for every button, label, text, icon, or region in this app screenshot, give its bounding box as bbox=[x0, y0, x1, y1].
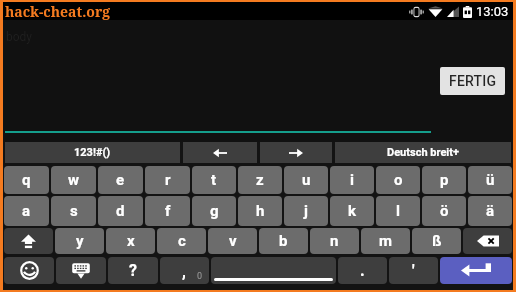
staticText: d bbox=[116, 202, 125, 220]
staticText: ö bbox=[440, 202, 449, 220]
button[interactable]: Emoji bbox=[4, 257, 54, 284]
button[interactable]: j bbox=[284, 196, 328, 226]
button[interactable]: p bbox=[422, 166, 466, 194]
button[interactable]: i bbox=[330, 166, 374, 194]
button[interactable]: ? bbox=[108, 257, 158, 284]
button[interactable]: d bbox=[98, 196, 143, 226]
button[interactable]: s bbox=[51, 196, 96, 226]
staticText: f bbox=[165, 202, 171, 220]
staticText: p bbox=[440, 171, 449, 189]
button[interactable]: Shift bbox=[4, 228, 53, 254]
button[interactable]: Enter bbox=[440, 257, 512, 284]
staticText: z bbox=[256, 171, 264, 189]
button[interactable]: v bbox=[208, 228, 257, 254]
button[interactable]: y bbox=[55, 228, 104, 254]
staticText: a bbox=[22, 202, 31, 220]
staticText: Deutsch breit+ bbox=[387, 146, 459, 159]
staticText: k bbox=[348, 202, 357, 220]
staticText: q bbox=[22, 171, 31, 189]
staticText: body bbox=[6, 30, 33, 44]
staticText: t bbox=[211, 171, 217, 189]
staticText: , bbox=[182, 262, 186, 281]
staticText: s bbox=[70, 202, 78, 220]
button[interactable]: e bbox=[98, 166, 143, 194]
staticText: 0 bbox=[197, 271, 203, 282]
button[interactable]: ö bbox=[422, 196, 466, 226]
button[interactable]: b bbox=[259, 228, 308, 254]
button[interactable]: f bbox=[145, 196, 190, 226]
button[interactable]: ä bbox=[468, 196, 512, 226]
button[interactable]: ' bbox=[389, 257, 438, 284]
button[interactable]: g bbox=[192, 196, 236, 226]
button[interactable]: . bbox=[338, 257, 387, 284]
button[interactable]: a bbox=[4, 196, 49, 226]
button[interactable]: n bbox=[310, 228, 359, 254]
button[interactable]: z bbox=[238, 166, 282, 194]
button[interactable]: q bbox=[4, 166, 49, 194]
button[interactable]: FERTIG bbox=[440, 67, 505, 95]
staticText: h bbox=[256, 202, 265, 220]
button[interactable]: ü bbox=[468, 166, 512, 194]
staticText: l bbox=[396, 202, 400, 220]
staticText: i bbox=[350, 171, 354, 189]
staticText: c bbox=[178, 232, 186, 250]
button[interactable]: Next bbox=[260, 142, 332, 163]
staticText: ä bbox=[486, 202, 495, 220]
staticText: v bbox=[229, 232, 237, 250]
button[interactable]: Deutsch breit+ bbox=[335, 142, 511, 163]
staticText: u bbox=[302, 171, 311, 189]
staticText: hack-cheat.org bbox=[5, 2, 111, 20]
button[interactable]: Hide keyboard bbox=[56, 257, 106, 284]
staticText: j bbox=[304, 202, 308, 220]
button[interactable]: ß bbox=[412, 228, 461, 254]
staticText: x bbox=[127, 232, 135, 250]
button[interactable]: x bbox=[106, 228, 155, 254]
button[interactable]: k bbox=[330, 196, 374, 226]
staticText: n bbox=[330, 232, 339, 250]
button[interactable]: , bbox=[160, 257, 209, 284]
staticText: 13:03 bbox=[476, 4, 509, 19]
button[interactable]: m bbox=[361, 228, 410, 254]
staticText: ? bbox=[129, 261, 137, 280]
button[interactable]: t bbox=[192, 166, 236, 194]
staticText: m bbox=[379, 232, 392, 250]
button[interactable]: Previous bbox=[183, 142, 257, 163]
staticText: y bbox=[76, 232, 84, 250]
button[interactable]: w bbox=[51, 166, 96, 194]
staticText: ß bbox=[432, 232, 442, 250]
button[interactable]: h bbox=[238, 196, 282, 226]
staticText: . bbox=[360, 261, 365, 280]
staticText: g bbox=[210, 202, 219, 220]
staticText: b bbox=[279, 232, 288, 250]
staticText: FERTIG bbox=[449, 73, 497, 89]
staticText: e bbox=[116, 171, 125, 189]
button[interactable]: u bbox=[284, 166, 328, 194]
button[interactable]: c bbox=[157, 228, 206, 254]
staticText: r bbox=[165, 171, 171, 189]
button[interactable]: l bbox=[376, 196, 420, 226]
button[interactable]: Backspace bbox=[463, 228, 512, 254]
staticText: o bbox=[394, 171, 403, 189]
button[interactable]: r bbox=[145, 166, 190, 194]
button[interactable]: o bbox=[376, 166, 420, 194]
button[interactable]: Space bbox=[211, 257, 336, 284]
staticText: ' bbox=[412, 261, 415, 280]
button[interactable]: 123!#() bbox=[5, 142, 180, 163]
staticText: ü bbox=[486, 171, 495, 189]
staticText: 123!#() bbox=[74, 146, 111, 159]
staticText: w bbox=[68, 171, 80, 189]
